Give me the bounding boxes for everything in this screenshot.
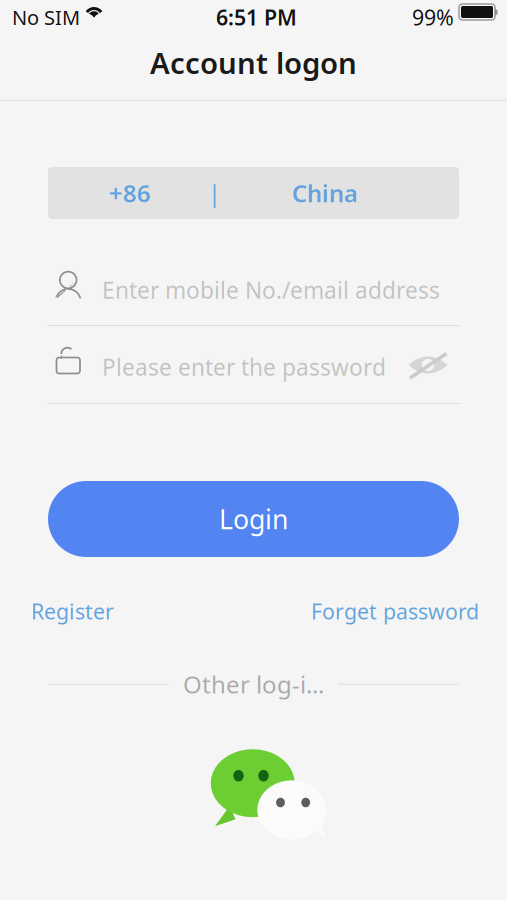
staticText: 99%: [412, 3, 454, 31]
staticText: Login: [219, 501, 288, 537]
button[interactable]: Forget password: [311, 593, 479, 629]
staticText: Enter mobile No./email address: [102, 275, 440, 305]
staticText: Account logon: [150, 43, 357, 82]
button[interactable]: +86: [48, 167, 459, 219]
staticText: 6:51 PM: [216, 3, 297, 31]
staticText: +86: [109, 177, 151, 209]
button[interactable]: Login: [48, 481, 459, 557]
button[interactable]: Log in with WeChat: [173, 746, 333, 846]
button[interactable]: Show password: [47, 358, 88, 383]
staticText: China: [292, 177, 358, 209]
staticText: Other log-i...: [183, 668, 324, 700]
staticText: Please enter the password: [102, 352, 386, 382]
staticText: |: [208, 177, 221, 209]
button[interactable]: Register: [31, 593, 114, 629]
staticText: Register: [31, 597, 114, 625]
staticText: No SIM: [12, 4, 80, 31]
staticText: Forget password: [311, 597, 479, 625]
